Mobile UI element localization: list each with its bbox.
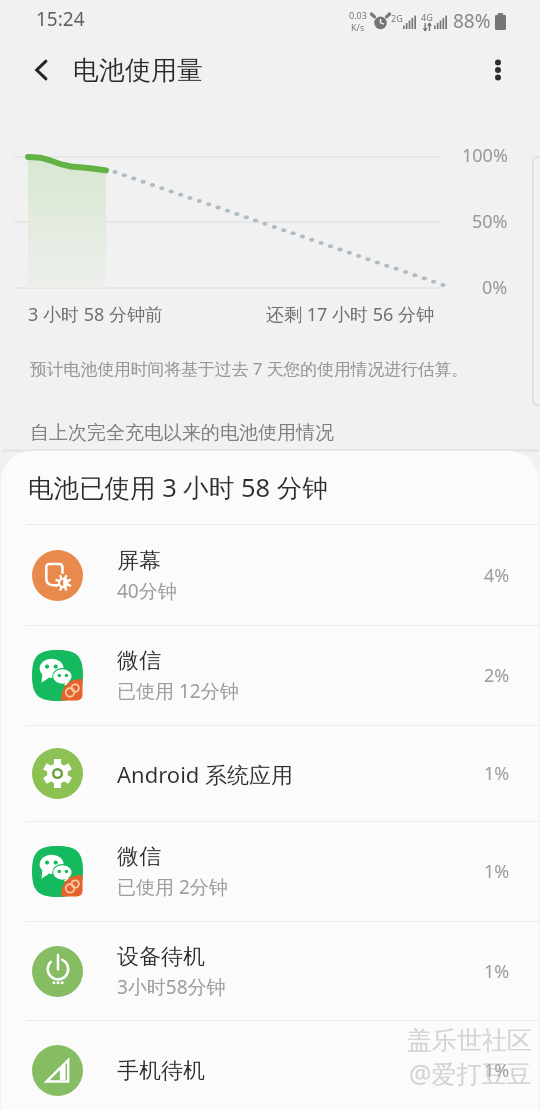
staticText: 微信 <box>117 843 161 871</box>
button[interactable]: More options <box>470 42 526 98</box>
staticText: 100% <box>462 143 508 168</box>
button[interactable]: Android 系统应用 <box>1 726 539 821</box>
staticText: 电池已使用 3 小时 58 分钟 <box>28 470 328 505</box>
staticText: Android 系统应用 <box>117 759 294 789</box>
staticText: 已使用 12分钟 <box>117 678 239 704</box>
staticText: 3 小时 58 分钟前 <box>28 302 163 327</box>
staticText: 电池使用量 <box>73 54 203 87</box>
staticText: 40分钟 <box>117 578 177 604</box>
staticText: 50% <box>472 209 508 234</box>
staticText: 1% <box>484 1058 510 1083</box>
staticText: 设备待机 <box>117 943 205 971</box>
button[interactable]: 手机待机 <box>1 1021 539 1110</box>
staticText: 4G <box>421 11 433 23</box>
button[interactable]: 屏幕 <box>1 525 539 625</box>
staticText: 88% <box>453 8 491 34</box>
staticText: 2% <box>484 663 510 688</box>
staticText: 预计电池使用时间将基于过去 7 天您的使用情况进行估算。 <box>30 357 469 380</box>
staticText: 3小时58分钟 <box>117 974 226 1000</box>
staticText: 0.03 <box>349 9 367 21</box>
staticText: 屏幕 <box>117 547 161 575</box>
staticText: 微信 <box>117 647 161 675</box>
button[interactable]: Back <box>14 42 70 98</box>
staticText: 0% <box>482 275 508 300</box>
button[interactable]: 设备待机 <box>1 922 539 1020</box>
staticText: 1% <box>484 959 510 984</box>
button[interactable]: 微信 <box>1 626 539 725</box>
staticText: 手机待机 <box>117 1057 205 1085</box>
staticText: K/s <box>351 21 365 33</box>
staticText: 2G <box>391 12 403 24</box>
staticText: 1% <box>484 859 510 884</box>
button[interactable]: 微信 <box>1 822 539 921</box>
staticText: 还剩 17 小时 56 分钟 <box>266 302 434 327</box>
staticText: 15:24 <box>36 6 85 32</box>
staticText: @爱打豆豆 <box>409 1056 532 1090</box>
staticText: 盖乐世社区 <box>407 1025 532 1056</box>
staticText: 4% <box>484 563 510 588</box>
staticText: 1% <box>484 761 510 786</box>
staticText: 已使用 2分钟 <box>117 874 228 900</box>
staticText: 自上次完全充电以来的电池使用情况 <box>30 421 334 445</box>
